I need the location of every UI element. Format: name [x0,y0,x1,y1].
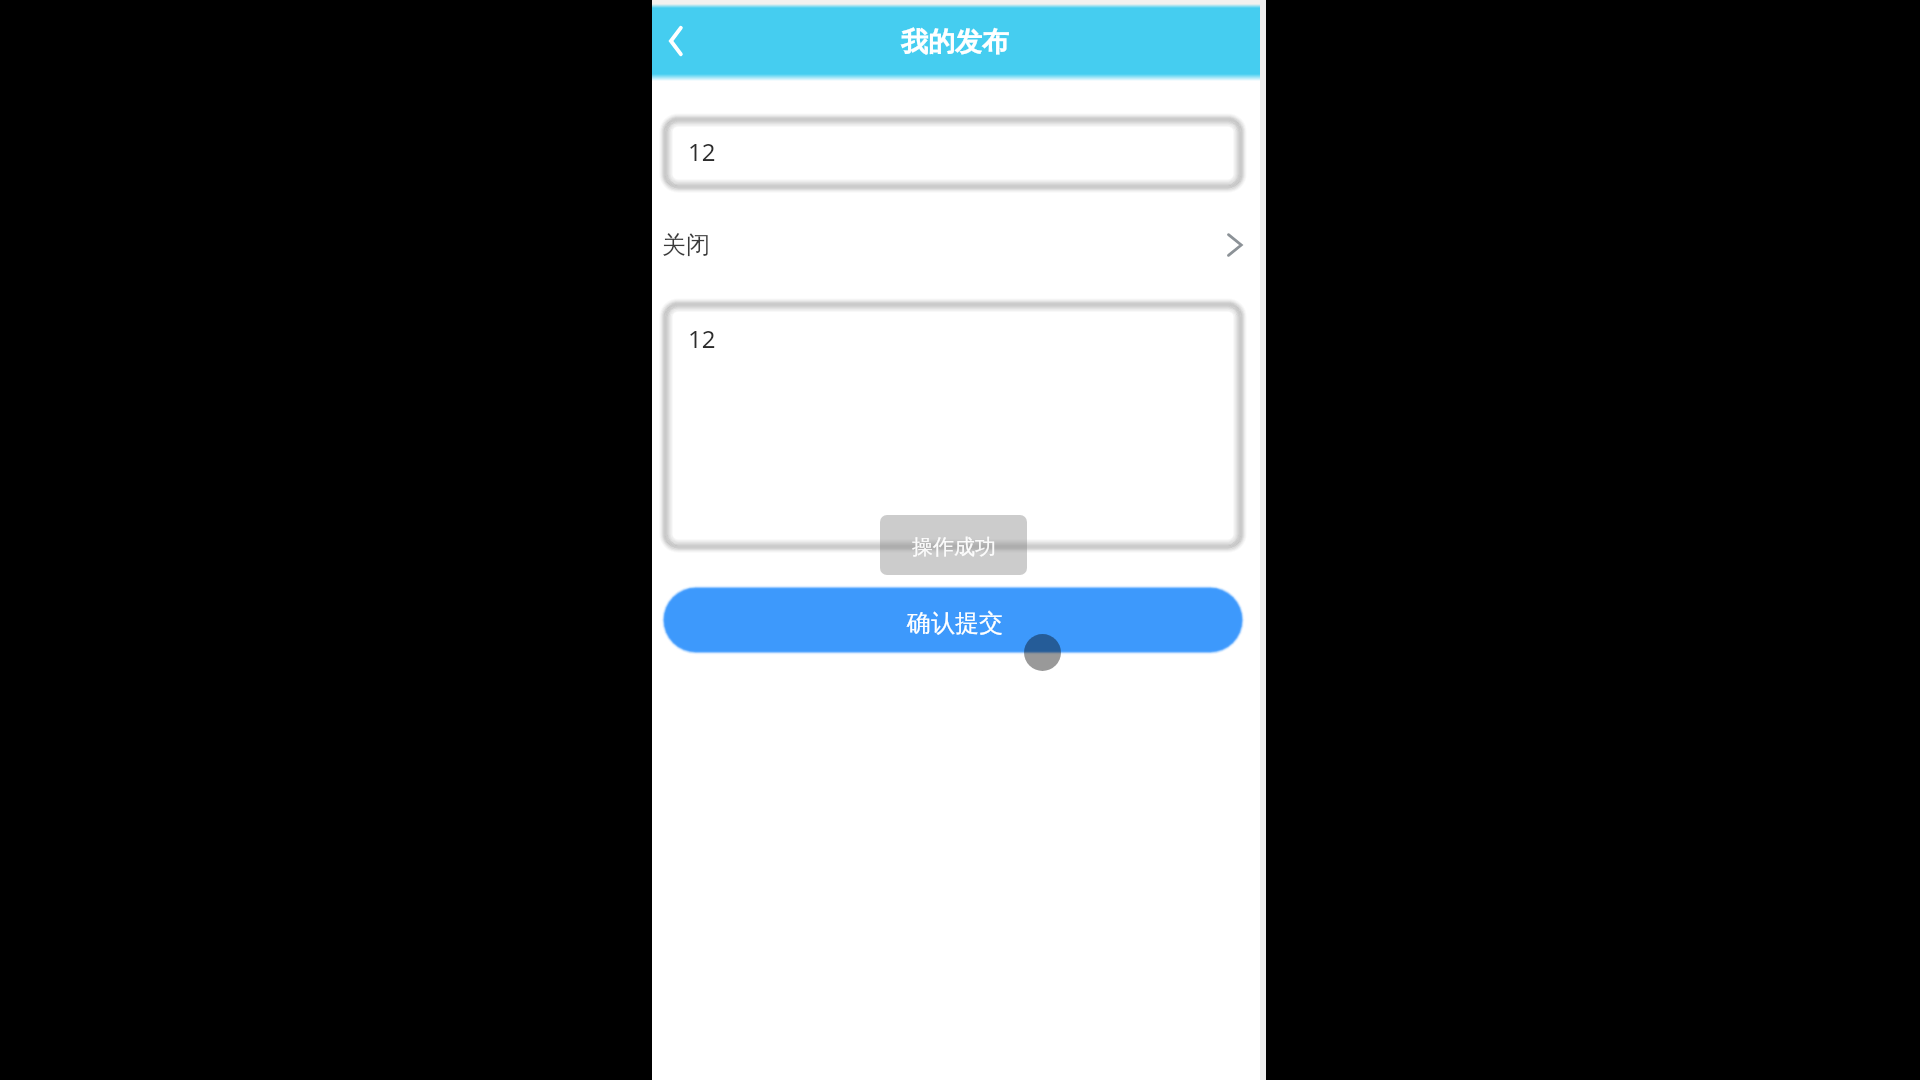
staticText: 操作成功 [912,534,996,560]
button[interactable]: 确认提交 [665,589,1241,651]
button[interactable]: 关闭 [652,211,1266,279]
staticText: 关闭 [662,230,710,260]
staticText: 确认提交 [907,608,1003,638]
staticText: 12 [688,135,716,168]
staticText: 12 [688,322,716,355]
button[interactable]: 12 [665,119,1241,187]
staticText: 我的发布 [901,25,1009,59]
button[interactable]: 12 [665,304,1241,547]
button[interactable]: Back [653,18,699,64]
